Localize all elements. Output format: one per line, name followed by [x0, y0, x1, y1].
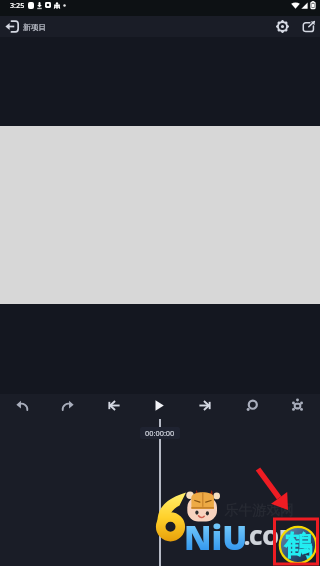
staticText: 新项目 [23, 22, 47, 32]
button[interactable]: Redo [45, 394, 90, 419]
button[interactable]: App icon [280, 527, 316, 563]
button[interactable]: Play [136, 394, 182, 419]
button[interactable]: Undo [0, 394, 45, 419]
staticText: .COM [244, 523, 300, 552]
button[interactable]: Back [0, 16, 23, 37]
button[interactable]: Skip to start [90, 394, 136, 419]
button[interactable]: Crop [274, 394, 320, 419]
staticText: NiU [184, 515, 248, 560]
staticText: 3:25 [10, 0, 25, 10]
button[interactable]: Settings [268, 16, 297, 37]
staticText: 乐牛游戏网 [224, 502, 294, 520]
button[interactable]: Mask [228, 394, 274, 419]
button[interactable]: Export [297, 16, 320, 37]
button[interactable]: Skip to end [182, 394, 228, 419]
staticText: 00:00:00 [145, 428, 175, 438]
staticText: 鶴 [284, 528, 312, 563]
